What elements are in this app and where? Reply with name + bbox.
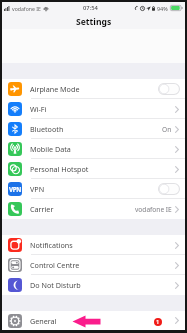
button[interactable]: Wi-Fi <box>2 99 185 119</box>
staticText: Airplane Mode <box>30 84 80 94</box>
staticText: Wi-Fi <box>30 104 47 114</box>
staticText: Personal Hotspot <box>30 164 89 174</box>
staticText: Do Not Disturb <box>30 280 81 290</box>
staticText: VPN <box>30 184 45 194</box>
button[interactable]: Control Centre <box>2 255 185 275</box>
staticText: vodafone IE <box>135 205 172 214</box>
button[interactable]: Bluetooth <box>2 119 185 139</box>
button[interactable]: Carrier <box>2 199 185 219</box>
staticText: vodafone IE <box>12 5 41 12</box>
button[interactable]: Do Not Disturb <box>2 275 185 295</box>
button[interactable]: VPN <box>2 179 185 199</box>
staticText: Bluetooth <box>30 124 64 134</box>
button[interactable]: General <box>2 311 185 330</box>
staticText: 1 <box>156 318 160 326</box>
staticText: Control Centre <box>30 260 80 270</box>
staticText: Mobile Data <box>30 144 71 154</box>
staticText: On <box>162 125 172 134</box>
button[interactable]: Airplane Mode <box>2 79 185 99</box>
staticText: 07:54 <box>83 4 98 12</box>
staticText: Carrier <box>30 204 54 214</box>
button[interactable]: Notifications <box>2 235 185 255</box>
button[interactable]: Personal Hotspot <box>2 159 185 179</box>
staticText: Notifications <box>30 240 73 250</box>
staticText: 94% <box>157 5 168 12</box>
staticText: General <box>30 316 57 326</box>
staticText: VPN <box>9 185 21 193</box>
staticText: Settings <box>76 16 112 28</box>
button[interactable]: Mobile Data <box>2 139 185 159</box>
